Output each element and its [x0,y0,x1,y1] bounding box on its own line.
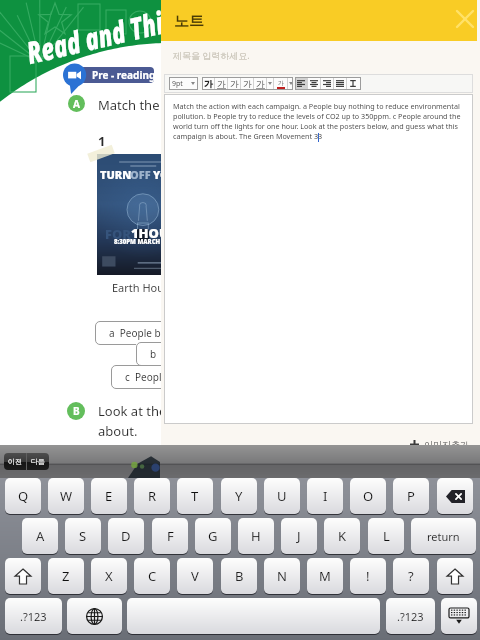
button[interactable]: 가 [228,77,240,90]
staticText: A [36,527,45,545]
button[interactable]: Q [5,478,41,514]
button[interactable]: 이미지추가 [410,436,469,452]
button[interactable]: Space [127,598,380,634]
button[interactable]: 가 [254,77,266,90]
button[interactable]: 가 [202,77,214,90]
button[interactable]: A [22,518,58,554]
button[interactable]: K [324,518,360,554]
button[interactable]: c People around [111,365,191,389]
button[interactable]: ! [350,558,386,594]
staticText: D [121,527,131,545]
button[interactable]: Pre - reading [80,67,154,83]
staticText: U [277,487,287,505]
button[interactable]: return [411,518,476,554]
staticText: F [167,527,174,545]
button[interactable]: L [368,518,404,554]
staticText: C [148,567,157,585]
staticText: OFF [130,167,151,182]
button[interactable]: ? [393,558,429,594]
button[interactable]: C [134,558,170,594]
staticText: I [323,487,328,505]
button[interactable]: Align left [295,77,307,90]
staticText: c People around [125,370,191,384]
button[interactable]: Justify [334,77,346,90]
button[interactable]: 가 [241,77,253,90]
staticText: A [73,97,80,111]
button[interactable]: F [152,518,188,554]
button[interactable] [267,77,273,90]
staticText: 가 [217,78,226,89]
button[interactable]: Align center [308,77,320,90]
button[interactable]: Z [48,558,84,594]
button[interactable]: 이전 [4,453,26,470]
staticText: O [363,487,374,505]
button[interactable]: Backspace [437,478,473,514]
button[interactable]: Hide keyboard [441,598,477,634]
button[interactable]: X [91,558,127,594]
button[interactable]: O [350,478,386,514]
staticText: 이미지추가 [424,439,469,450]
staticText: N [277,567,287,585]
staticText: 노트 [174,12,204,31]
staticText: a People buy nothing [109,326,187,340]
button[interactable]: R [134,478,170,514]
staticText: Read and Think [22,0,180,72]
button[interactable]: D [108,518,144,554]
staticText: 가 [204,78,213,89]
button[interactable]: P [393,478,429,514]
button[interactable]: S [65,518,101,554]
staticText: 다음 [31,457,45,466]
staticText: YO [153,167,169,182]
staticText: 가 [278,79,284,87]
button[interactable] [288,77,293,90]
button[interactable]: N [264,558,300,594]
button[interactable]: B [221,558,257,594]
button[interactable]: U [264,478,300,514]
staticText: Earth Hour [112,280,169,295]
staticText: T [191,487,199,505]
button[interactable]: 가 [215,77,227,90]
staticText: Match the action with each campaign. a P… [173,101,467,141]
button[interactable]: H [238,518,274,554]
staticText: Pre - reading [92,68,154,82]
staticText: 제목을 입력하세요. [173,49,250,61]
button[interactable]: Shift [5,558,41,594]
button[interactable]: I [307,478,343,514]
staticText: V [191,567,199,585]
button[interactable]: G [195,518,231,554]
button[interactable]: b People try to [136,342,208,366]
button[interactable]: V [177,558,213,594]
button[interactable]: Change language [67,598,122,634]
button[interactable]: 9pt [169,77,198,90]
staticText: ! [366,567,370,585]
button[interactable]: 제목을 입력하세요. [161,42,480,68]
staticText: 1HOU [131,224,169,242]
staticText: Match the act [98,96,182,114]
button[interactable]: E [91,478,127,514]
button[interactable]: Y [221,478,257,514]
staticText: E [105,487,113,505]
button[interactable]: .?123 [5,598,62,634]
button[interactable]: Line height [347,77,359,90]
staticText: W [60,487,73,505]
staticText: FOR [105,225,132,243]
button[interactable]: 다음 [27,453,49,470]
button[interactable]: a People buy nothing [95,321,187,345]
button[interactable]: Shift [437,558,473,594]
staticText: P [407,487,415,505]
button[interactable]: .?123 [386,598,435,634]
staticText: 가 [243,78,252,89]
button[interactable]: T [177,478,213,514]
staticText: K [338,527,347,545]
button[interactable]: Text colour [274,77,287,90]
staticText: ? [408,567,414,585]
button[interactable]: Close [450,4,480,34]
button[interactable]: J [281,518,317,554]
button[interactable]: M [307,558,343,594]
staticText: 8:30PM MARCH 29 [114,238,169,246]
staticText: Q [18,487,29,505]
button[interactable]: Align right [321,77,333,90]
staticText: X [105,567,113,585]
staticText: B [235,567,244,585]
button[interactable]: W [48,478,84,514]
